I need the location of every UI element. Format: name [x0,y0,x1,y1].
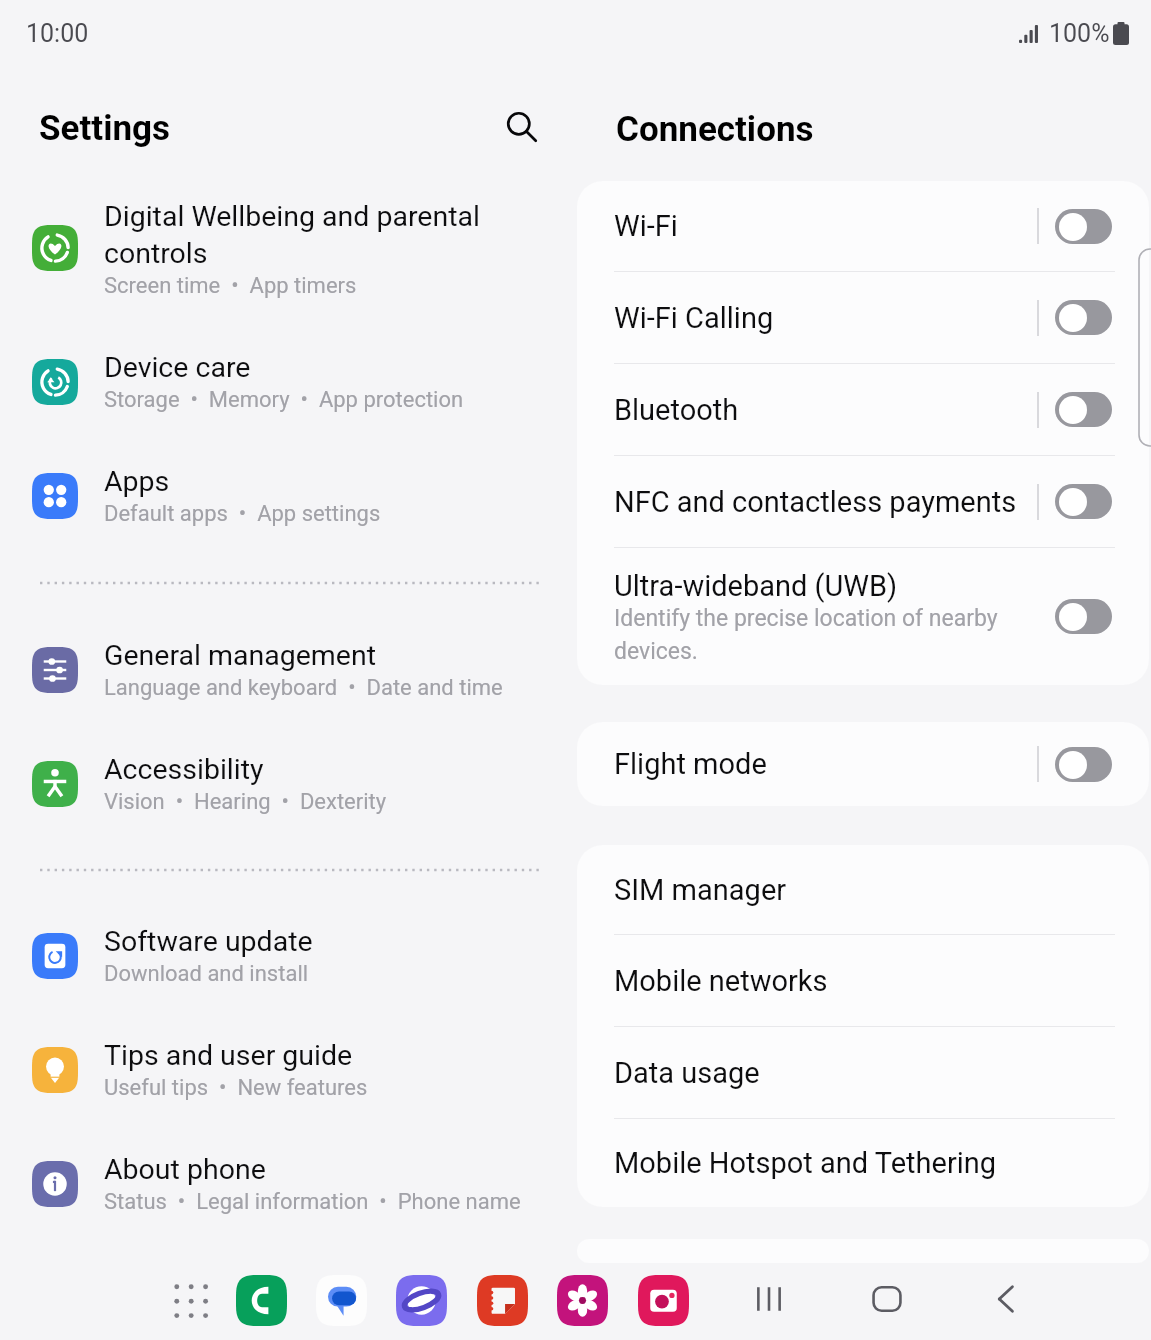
button[interactable]: Mobile Hotspot and Tethering [577,1119,1149,1207]
button[interactable]: Digital Wellbeing and parental controls [0,206,560,318]
button[interactable]: Toggle [1055,599,1112,634]
button[interactable]: General management [0,645,560,723]
button[interactable]: Mobile networks [577,935,1149,1026]
staticText: Useful tips • New features [104,1075,368,1101]
staticText: Apps [104,465,504,498]
staticText: Status • Legal information • Phone name [104,1189,521,1215]
button[interactable]: Toggle [1055,209,1112,244]
staticText: Mobile networks [614,964,828,998]
button[interactable]: Toggle [1055,747,1112,782]
button[interactable]: NFC and contactless payments [577,456,1149,547]
button[interactable]: Bluetooth [577,364,1149,455]
staticText: Accessibility [104,753,504,786]
staticText: Flight mode [614,747,767,781]
staticText: Data usage [614,1056,760,1090]
staticText: Tips and user guide [104,1039,504,1072]
button[interactable]: gallery [554,1272,610,1328]
staticText: 10:00 [26,19,89,48]
staticText: General management [104,639,504,672]
staticText: Software update [104,925,504,958]
staticText: Vision • Hearing • Dexterity [104,789,387,815]
staticText: SIM manager [614,873,787,907]
button[interactable]: Toggle [1055,300,1112,335]
button[interactable]: Ultra-wideband (UWB) [577,548,1149,685]
button[interactable]: notes [474,1272,530,1328]
button[interactable]: Data usage [577,1027,1149,1118]
staticText: Language and keyboard • Date and time [104,675,503,701]
staticText: Download and install [104,961,309,987]
button[interactable]: Software update [0,931,560,1009]
staticText: Settings [39,108,170,149]
button[interactable]: Tips and user guide [0,1045,560,1123]
staticText: Mobile Hotspot and Tethering [614,1146,997,1180]
staticText: Ultra-wideband (UWB) [614,569,898,603]
button[interactable]: Wi-Fi Calling [577,272,1149,363]
staticText: Wi-Fi Calling [614,301,774,335]
staticText: Digital Wellbeing and parental controls [104,200,504,270]
button[interactable]: About phone [0,1159,560,1237]
staticText: Storage • Memory • App protection [104,387,464,413]
button[interactable]: internet [393,1272,449,1328]
button[interactable]: phone [233,1272,289,1328]
button[interactable]: Wi-Fi [577,181,1149,271]
button[interactable]: Apps [0,471,560,549]
button[interactable]: Accessibility [0,759,560,837]
button[interactable]: Toggle [1055,484,1112,519]
staticText: NFC and contactless payments [614,485,1017,519]
button[interactable]: camera [635,1272,691,1328]
staticText: Device care [104,351,504,384]
button[interactable]: Recents [741,1271,797,1327]
staticText: Connections [616,109,814,150]
button[interactable]: Home [859,1271,915,1327]
staticText: Bluetooth [614,393,739,427]
button[interactable]: SIM manager [577,845,1149,934]
staticText: Default apps • App settings [104,501,381,527]
staticText: About phone [104,1153,504,1186]
button[interactable]: Flight mode [577,722,1149,806]
button[interactable]: Back [978,1271,1034,1327]
staticText: 100% [1049,19,1110,48]
button[interactable]: messages [313,1272,369,1328]
staticText: Screen time • App timers [104,273,357,299]
staticText: Wi-Fi [614,209,678,243]
button[interactable]: Toggle [1055,392,1112,427]
button[interactable]: Search [494,99,550,155]
button[interactable]: App drawer [163,1273,219,1329]
button[interactable]: Device care [0,357,560,435]
staticText: Identify the precise location of nearby … [614,605,1043,665]
